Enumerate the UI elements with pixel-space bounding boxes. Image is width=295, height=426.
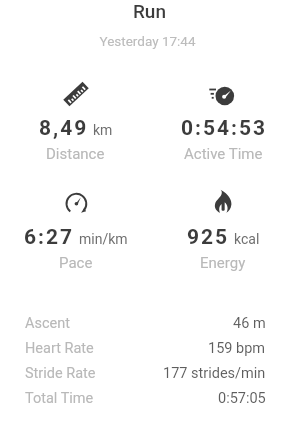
- button[interactable]: Ascent: [0, 311, 295, 336]
- staticText: 159 bpm: [208, 340, 266, 357]
- staticText: km: [93, 122, 113, 138]
- staticText: Active Time: [184, 145, 263, 163]
- staticText: Total Time: [25, 390, 94, 407]
- staticText: Pace: [59, 254, 93, 272]
- staticText: 6:27: [24, 225, 75, 250]
- staticText: Energy: [200, 254, 246, 272]
- other: Active time: [209, 80, 237, 108]
- button[interactable]: Heart Rate: [0, 336, 295, 361]
- staticText: Heart Rate: [25, 340, 94, 357]
- button[interactable]: Total Time: [0, 386, 295, 411]
- button[interactable]: Stride Rate: [0, 361, 295, 386]
- staticText: 46 m: [233, 315, 266, 332]
- staticText: Yesterday 17:44: [0, 33, 295, 49]
- staticText: 8,49: [39, 116, 89, 141]
- staticText: 177 strides/min: [163, 365, 266, 382]
- button[interactable]: Distance: [0, 80, 147, 163]
- button[interactable]: Energy: [147, 189, 295, 272]
- other: Energy: [209, 189, 237, 217]
- button[interactable]: Active time: [147, 80, 295, 163]
- staticText: Stride Rate: [25, 365, 96, 382]
- other: Distance: [62, 80, 90, 108]
- staticText: 0:54:53: [181, 116, 268, 141]
- staticText: 925: [187, 225, 230, 250]
- staticText: kcal: [234, 231, 260, 247]
- staticText: Ascent: [25, 315, 70, 332]
- button[interactable]: Pace: [0, 189, 147, 272]
- staticText: Distance: [46, 145, 105, 163]
- other: Pace: [62, 189, 90, 217]
- staticText: min/km: [79, 231, 128, 247]
- staticText: Run: [2, 0, 295, 22]
- staticText: 0:57:05: [218, 390, 266, 407]
